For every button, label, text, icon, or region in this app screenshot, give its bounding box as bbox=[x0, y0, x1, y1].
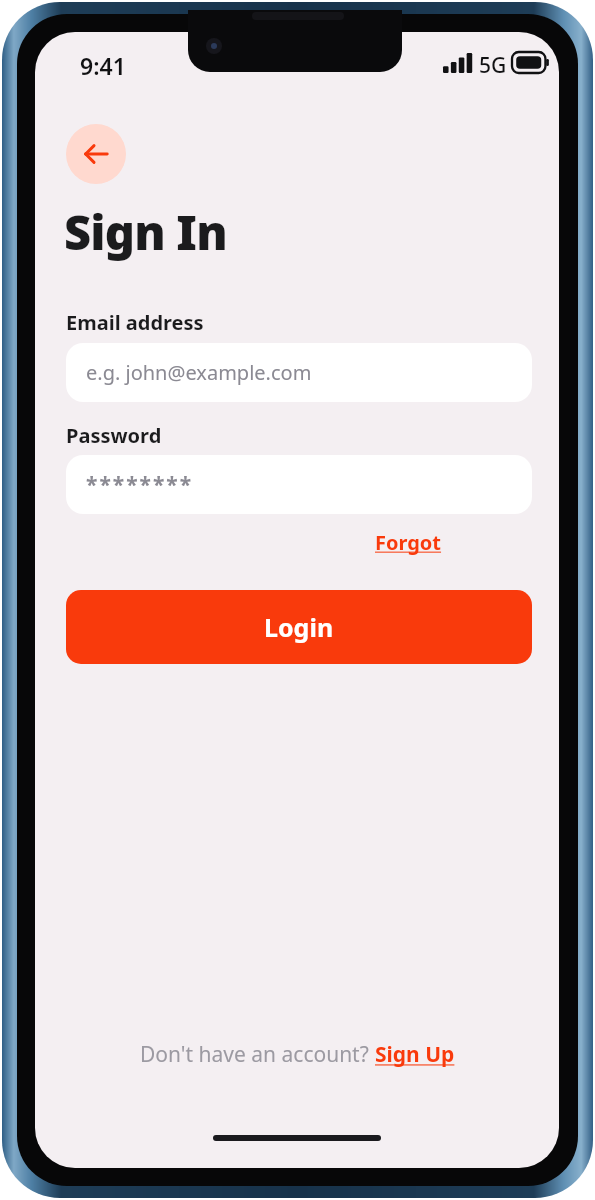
button[interactable]: Back bbox=[66, 124, 126, 184]
button[interactable]: Forgot password? bbox=[375, 529, 532, 561]
staticText: ******** bbox=[86, 470, 194, 499]
button[interactable]: e.g. john@example.com bbox=[66, 343, 532, 402]
button[interactable]: Sign Up bbox=[375, 1040, 455, 1069]
staticText: Sign In bbox=[64, 200, 227, 264]
staticText: Sign Up bbox=[375, 1040, 455, 1069]
staticText: Login bbox=[264, 610, 334, 644]
staticText: 5G bbox=[479, 51, 507, 80]
staticText: Don't have an account? bbox=[140, 1040, 375, 1069]
staticText: e.g. john@example.com bbox=[86, 359, 312, 386]
staticText: Forgot password? bbox=[375, 529, 532, 561]
button[interactable]: ******** bbox=[66, 455, 532, 514]
staticText: Email address bbox=[66, 309, 204, 336]
button[interactable]: Login bbox=[66, 590, 532, 664]
staticText: 9:41 bbox=[80, 50, 126, 81]
staticText: Password bbox=[66, 422, 162, 449]
